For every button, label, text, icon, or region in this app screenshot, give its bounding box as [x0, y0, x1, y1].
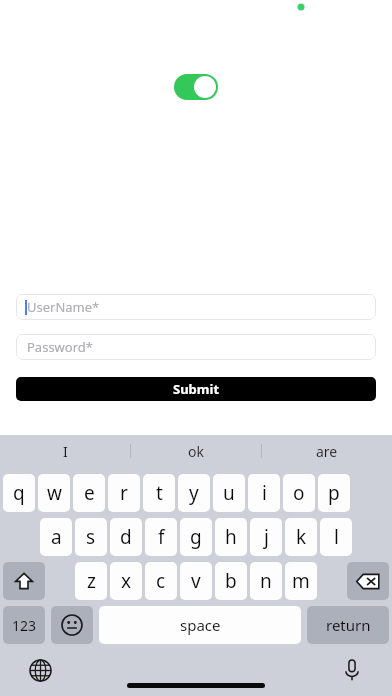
button[interactable]: s — [75, 518, 107, 556]
button[interactable]: j — [250, 518, 282, 556]
button[interactable]: Change keyboard — [24, 654, 56, 686]
button[interactable]: e — [73, 474, 105, 512]
button[interactable]: 123 — [3, 606, 45, 644]
button[interactable]: p — [318, 474, 350, 512]
staticText: Password* — [27, 338, 93, 356]
button[interactable]: w — [38, 474, 70, 512]
staticText: t — [156, 480, 163, 506]
button[interactable]: Toggle — [174, 74, 218, 100]
staticText: h — [225, 524, 237, 550]
button[interactable]: n — [250, 562, 282, 600]
staticText: p — [328, 480, 340, 506]
staticText: g — [190, 524, 202, 550]
staticText: m — [292, 568, 310, 594]
button[interactable]: i — [248, 474, 280, 512]
button[interactable]: y — [178, 474, 210, 512]
button[interactable]: UserName* — [16, 294, 376, 320]
button[interactable]: Dictation — [336, 654, 368, 686]
button[interactable]: Emoji — [51, 606, 93, 644]
staticText: l — [334, 524, 339, 550]
button[interactable]: r — [108, 474, 140, 512]
staticText: b — [225, 568, 237, 594]
button[interactable]: I — [0, 435, 130, 467]
staticText: q — [13, 480, 25, 506]
button[interactable]: m — [285, 562, 317, 600]
button[interactable]: Submit — [16, 377, 376, 401]
staticText: r — [120, 480, 128, 506]
staticText: 123 — [12, 616, 37, 635]
staticText: n — [260, 568, 272, 594]
button[interactable]: f — [145, 518, 177, 556]
button[interactable]: u — [213, 474, 245, 512]
button[interactable]: v — [180, 562, 212, 600]
button[interactable]: Shift — [3, 562, 45, 600]
staticText: e — [84, 480, 95, 506]
button[interactable]: are — [262, 435, 392, 467]
button[interactable]: g — [180, 518, 212, 556]
staticText: are — [316, 442, 338, 461]
staticText: Submit — [173, 380, 220, 398]
staticText: space — [180, 615, 221, 635]
staticText: d — [120, 524, 132, 550]
button[interactable]: space — [99, 606, 301, 644]
staticText: x — [121, 568, 132, 594]
staticText: u — [223, 480, 235, 506]
staticText: z — [87, 568, 96, 594]
staticText: a — [51, 524, 62, 550]
button[interactable]: a — [40, 518, 72, 556]
staticText: s — [86, 524, 96, 550]
button[interactable]: o — [283, 474, 315, 512]
staticText: i — [262, 480, 267, 506]
button[interactable]: k — [285, 518, 317, 556]
button[interactable]: ok — [131, 435, 261, 467]
staticText: ok — [188, 442, 204, 461]
button[interactable]: x — [110, 562, 142, 600]
button[interactable]: l — [320, 518, 352, 556]
staticText: return — [326, 615, 371, 635]
staticText: o — [293, 480, 305, 506]
button[interactable]: b — [215, 562, 247, 600]
staticText: UserName* — [27, 298, 100, 316]
button[interactable]: q — [3, 474, 35, 512]
staticText: y — [189, 480, 199, 506]
staticText: k — [296, 524, 307, 550]
staticText: c — [156, 568, 166, 594]
staticText: v — [191, 568, 201, 594]
staticText: j — [264, 524, 269, 550]
button[interactable]: d — [110, 518, 142, 556]
button[interactable]: h — [215, 518, 247, 556]
staticText: I — [63, 442, 68, 461]
button[interactable]: c — [145, 562, 177, 600]
staticText: w — [47, 480, 62, 506]
button[interactable]: return — [307, 606, 389, 644]
button[interactable]: z — [75, 562, 107, 600]
staticText: f — [158, 524, 165, 550]
button[interactable]: Password* — [16, 334, 376, 360]
button[interactable]: Backspace — [347, 562, 389, 600]
button[interactable]: t — [143, 474, 175, 512]
